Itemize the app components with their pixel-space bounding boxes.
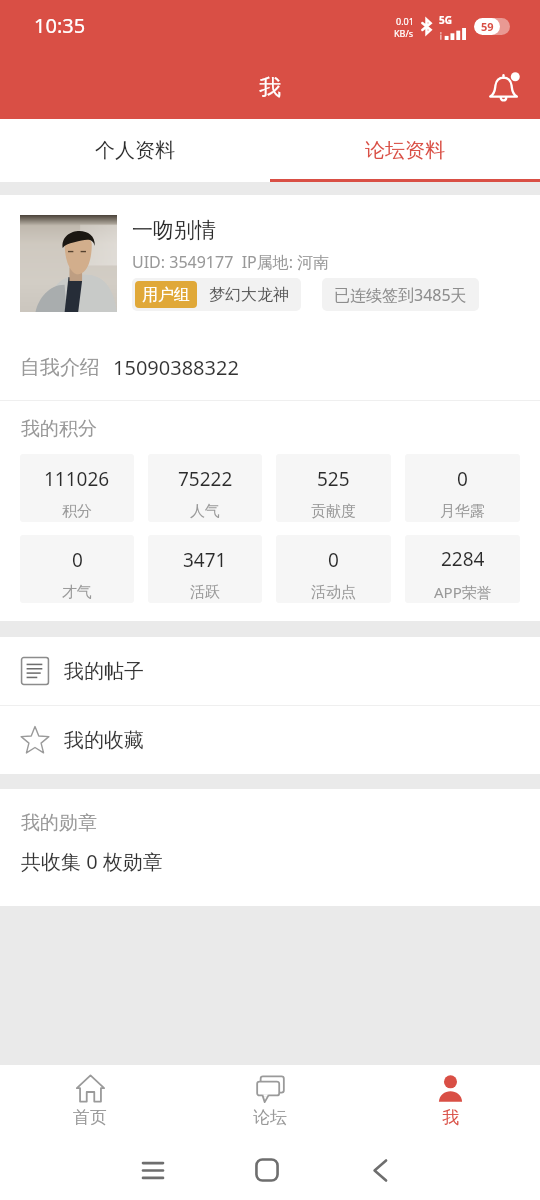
staticText: 0.01 bbox=[396, 15, 414, 27]
button[interactable]: Recents bbox=[125, 1140, 181, 1200]
staticText: 75222 bbox=[178, 466, 233, 492]
staticText: 活动点 bbox=[311, 583, 356, 602]
button[interactable]: 0 bbox=[276, 535, 391, 603]
staticText: 我的收藏 bbox=[64, 728, 144, 753]
staticText: 活跃 bbox=[190, 583, 220, 602]
staticText: 积分 bbox=[62, 502, 92, 521]
staticText: APP荣誉 bbox=[434, 582, 492, 602]
staticText: 15090388322 bbox=[113, 354, 239, 381]
staticText: 0 bbox=[457, 466, 468, 492]
staticText: 梦幻大龙神 bbox=[209, 285, 289, 305]
button[interactable]: Avatar bbox=[20, 215, 117, 312]
button[interactable]: 用户组 bbox=[132, 278, 301, 311]
button[interactable]: 525 bbox=[276, 454, 391, 522]
staticText: 10:35 bbox=[34, 12, 86, 39]
button[interactable]: Notifications bbox=[479, 64, 527, 112]
staticText: 0 bbox=[328, 547, 339, 573]
staticText: 我 bbox=[442, 1107, 459, 1128]
button[interactable]: 2284 bbox=[405, 535, 520, 603]
button[interactable]: 论坛资料 bbox=[270, 119, 540, 182]
staticText: 贡献度 bbox=[311, 502, 356, 521]
staticText: 共收集 0 枚勋章 bbox=[21, 848, 163, 875]
button[interactable]: Back bbox=[352, 1140, 408, 1200]
staticText: 已连续签到3485天 bbox=[334, 284, 467, 306]
staticText: 人气 bbox=[190, 502, 220, 521]
staticText: 525 bbox=[317, 466, 350, 492]
staticText: 111026 bbox=[44, 466, 110, 492]
staticText: 一吻别情 bbox=[132, 217, 216, 243]
staticText: 我的勋章 bbox=[21, 811, 97, 835]
button[interactable]: 已连续签到3485天 bbox=[322, 278, 479, 311]
button[interactable]: 首页 bbox=[0, 1065, 180, 1140]
staticText: 首页 bbox=[73, 1107, 107, 1128]
staticText: 个人资料 bbox=[95, 138, 175, 163]
button[interactable]: 111026 bbox=[20, 454, 134, 522]
button[interactable]: 3471 bbox=[148, 535, 262, 603]
staticText: 才气 bbox=[62, 583, 92, 602]
button[interactable]: 我的收藏 bbox=[0, 706, 540, 774]
button[interactable]: 75222 bbox=[148, 454, 262, 522]
staticText: 论坛 bbox=[253, 1107, 287, 1128]
staticText: 论坛资料 bbox=[365, 138, 445, 163]
staticText: 59 bbox=[481, 19, 494, 34]
staticText: 我的积分 bbox=[21, 417, 97, 441]
staticText: 3471 bbox=[183, 547, 227, 573]
button[interactable]: 0 bbox=[405, 454, 520, 522]
staticText: 自我介绍 bbox=[20, 355, 100, 380]
staticText: 2284 bbox=[441, 546, 485, 572]
staticText: 用户组 bbox=[142, 285, 190, 305]
button[interactable]: 我的帖子 bbox=[0, 637, 540, 705]
button[interactable]: 我 bbox=[360, 1065, 540, 1140]
staticText: 我的帖子 bbox=[64, 659, 144, 684]
staticText: 0 bbox=[72, 547, 83, 573]
staticText: 月华露 bbox=[440, 502, 485, 521]
button[interactable]: 0 bbox=[20, 535, 134, 603]
staticText: 我 bbox=[259, 74, 281, 102]
staticText: KB/s bbox=[394, 27, 414, 39]
button[interactable]: 个人资料 bbox=[0, 119, 270, 182]
button[interactable]: Home bbox=[239, 1140, 295, 1200]
staticText: 5G bbox=[439, 13, 452, 27]
staticText: UID: 3549177 IP属地: 河南 bbox=[132, 251, 330, 273]
button[interactable]: 论坛 bbox=[180, 1065, 360, 1140]
